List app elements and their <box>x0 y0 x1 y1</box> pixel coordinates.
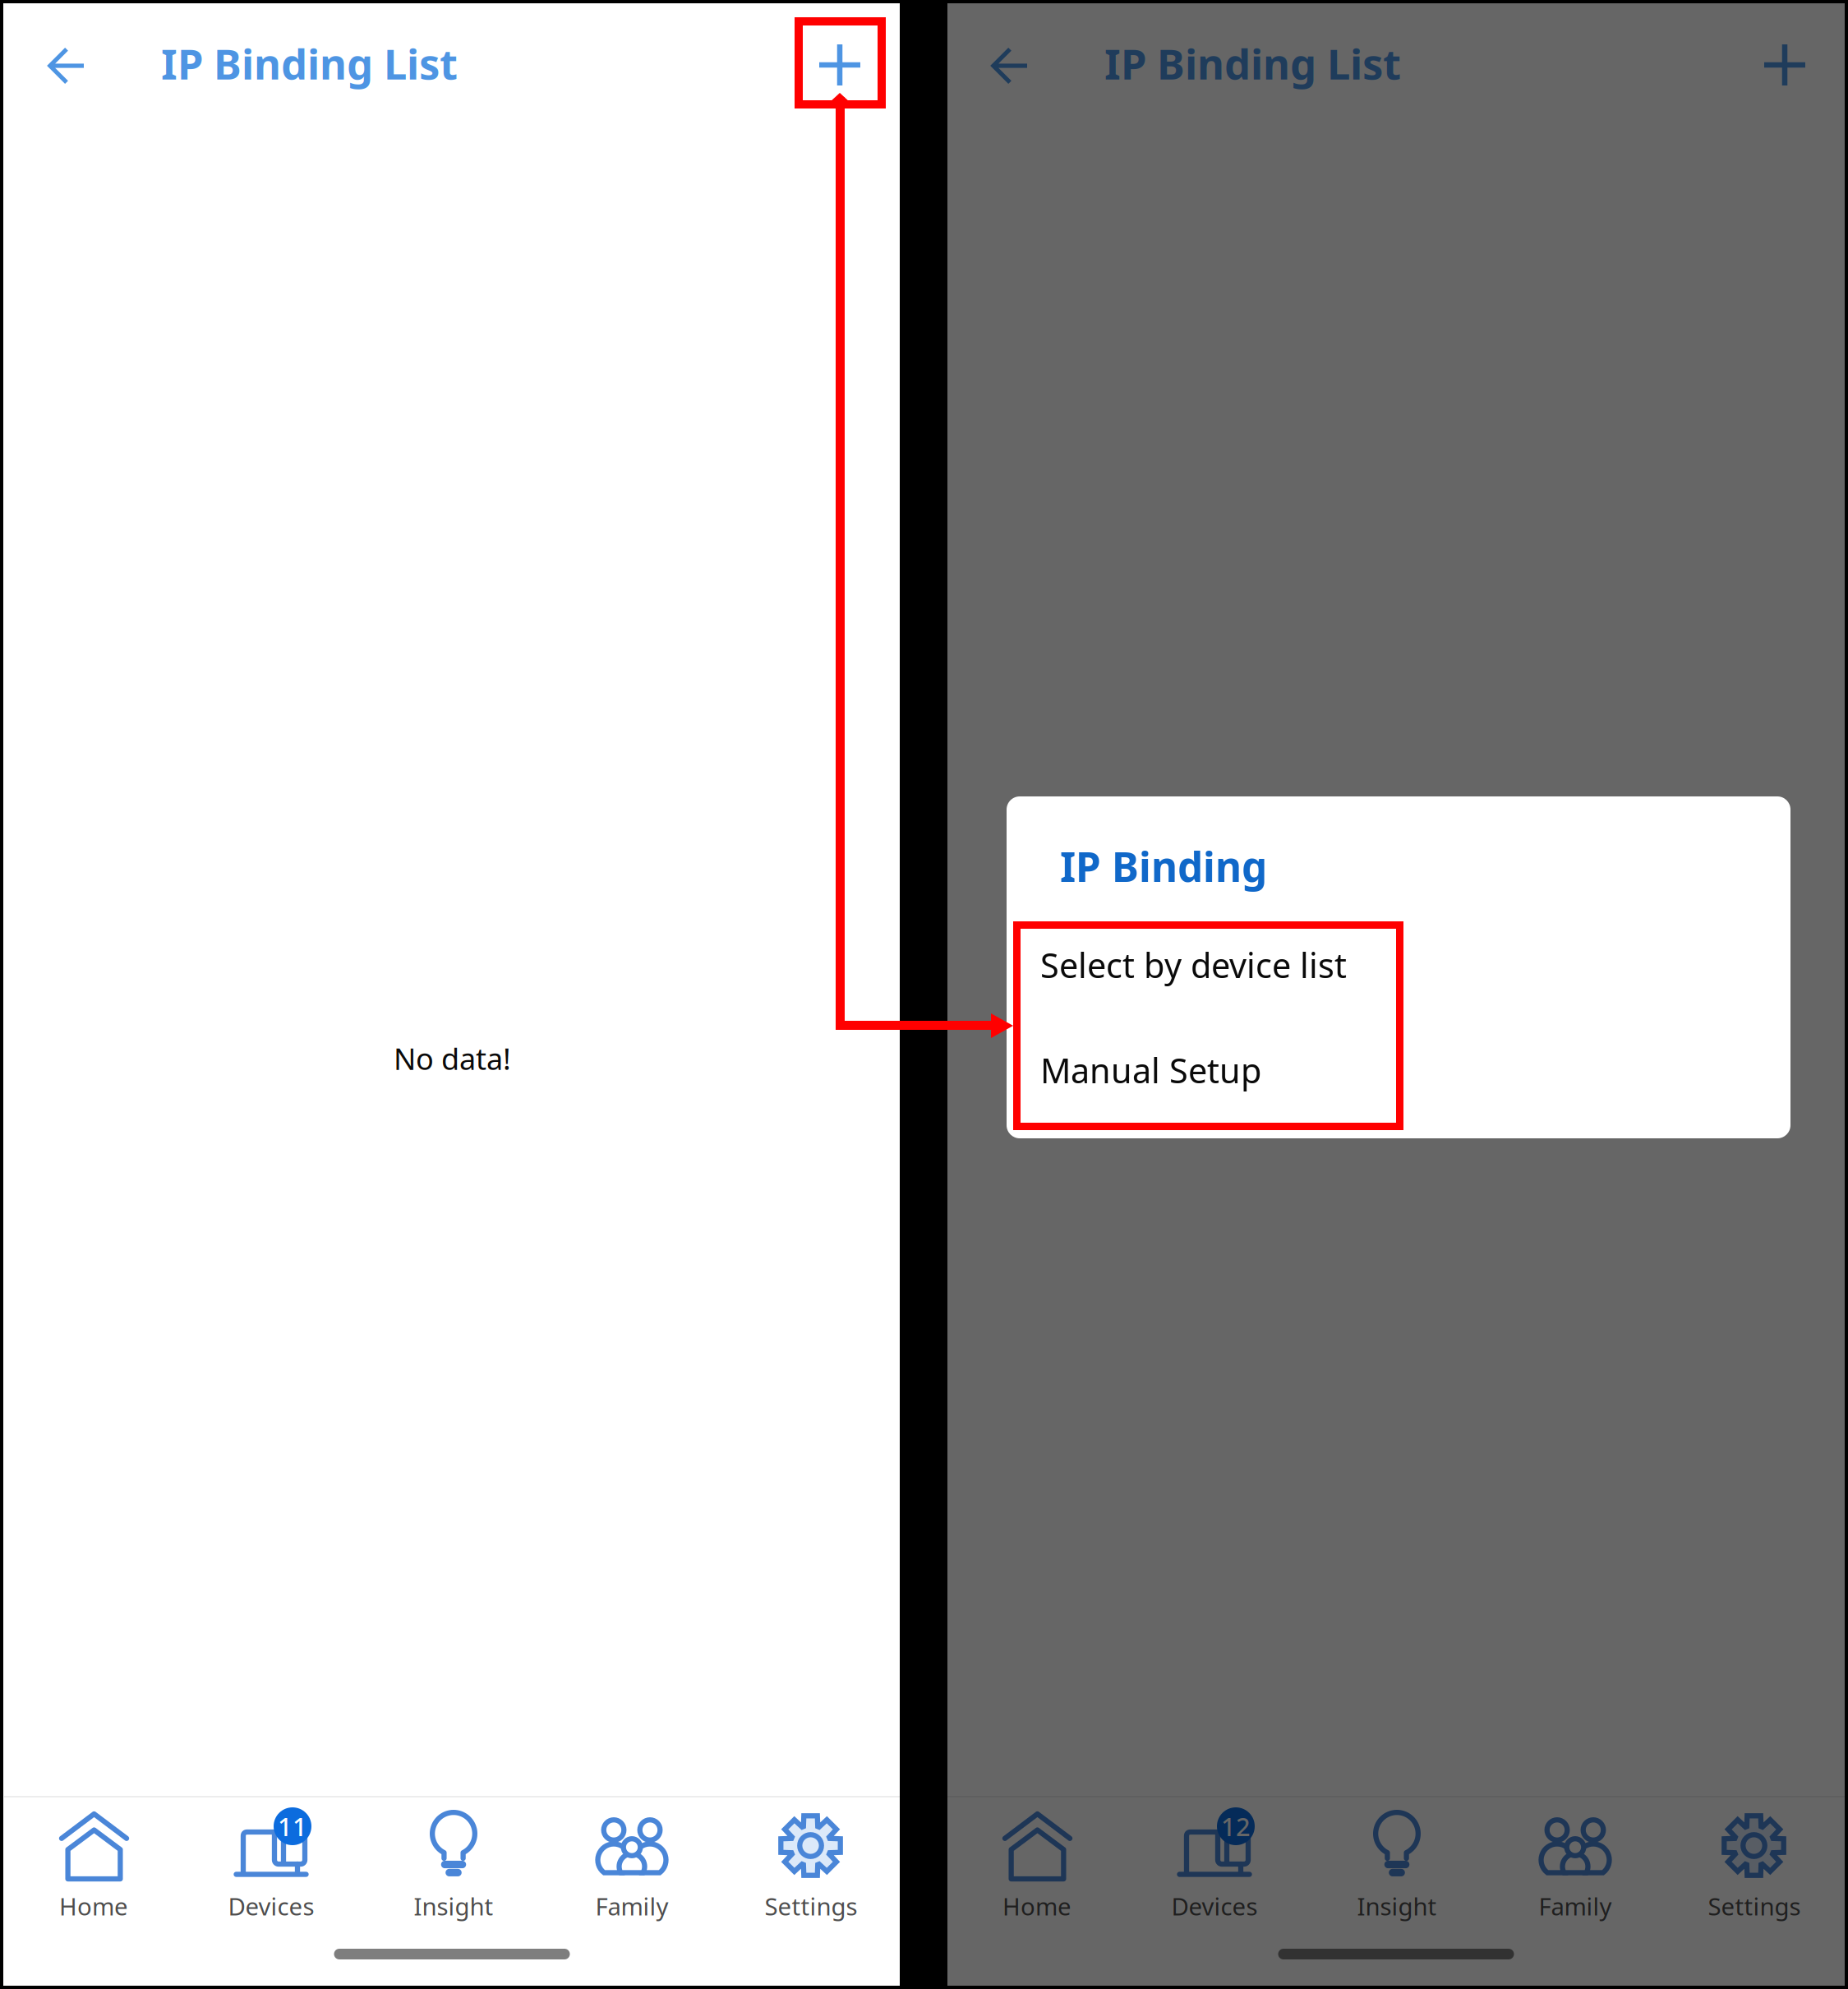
staticText: 12 <box>1221 1809 1251 1843</box>
button[interactable]: Insight <box>362 1796 541 1985</box>
button[interactable]: Home <box>947 1796 1127 1985</box>
button[interactable]: Family <box>1485 1796 1664 1985</box>
button[interactable]: Manual Setup <box>1040 1024 1426 1116</box>
button[interactable]: Select by device list <box>1040 919 1426 1011</box>
button[interactable]: IP Binding List <box>161 21 473 106</box>
staticText: Settings <box>765 1890 857 1922</box>
button[interactable]: IP Binding List <box>1104 21 1417 106</box>
button[interactable]: Home <box>4 1796 183 1985</box>
staticText: Family <box>1539 1890 1612 1922</box>
staticText: IP Binding List <box>1104 36 1401 91</box>
staticText: Devices <box>1171 1890 1258 1922</box>
staticText: Settings <box>1708 1890 1801 1922</box>
button[interactable]: Add <box>797 22 883 108</box>
staticText: No data! <box>394 1039 511 1078</box>
staticText: Home <box>59 1890 128 1922</box>
staticText: Devices <box>228 1890 314 1922</box>
staticText: Insight <box>414 1890 493 1922</box>
staticText: No data! <box>1337 1039 1454 1078</box>
staticText: Home <box>1002 1890 1071 1922</box>
staticText: IP Binding List <box>161 36 458 91</box>
staticText: Select by device list <box>1040 942 1347 988</box>
staticText: Manual Setup <box>1040 1048 1261 1093</box>
button[interactable]: Family <box>541 1796 721 1985</box>
button[interactable]: Add <box>1742 22 1827 108</box>
button[interactable]: Insight <box>1306 1796 1485 1985</box>
button[interactable]: Back <box>24 23 109 108</box>
button[interactable]: Settings <box>721 1796 896 1985</box>
staticText: Insight <box>1357 1890 1437 1922</box>
button[interactable]: Settings <box>1664 1796 1840 1985</box>
staticText: 11 <box>278 1809 307 1843</box>
button[interactable]: 12 <box>1127 1796 1306 1985</box>
staticText: Family <box>595 1890 668 1922</box>
button[interactable]: 11 <box>183 1796 362 1985</box>
staticText: IP Binding <box>1060 839 1267 893</box>
button[interactable]: Back <box>967 23 1053 108</box>
